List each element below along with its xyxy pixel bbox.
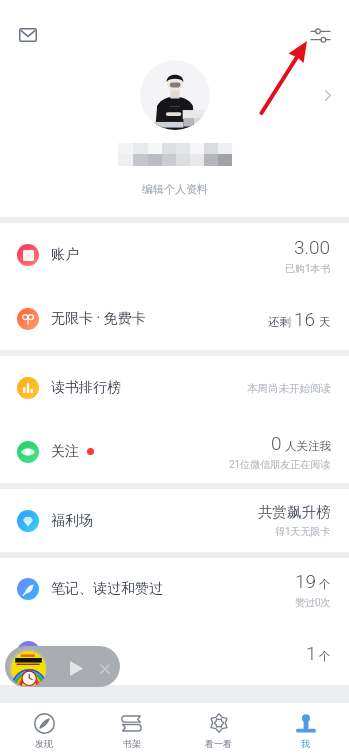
staticText: 看一看 [205,738,232,749]
button[interactable]: Profile details [315,82,341,108]
staticText: 天 [319,315,331,329]
button[interactable]: Settings [302,17,338,53]
staticText: 1 [306,642,317,664]
button[interactable]: Avatar [140,60,210,130]
staticText: 账户 [51,246,79,264]
button[interactable]: 笔记、读过和赞过 [0,558,349,620]
button[interactable]: Messages [10,17,46,53]
button[interactable]: 关注 [0,420,349,483]
button[interactable]: 我 [262,703,349,755]
button[interactable]: 看一看 [175,703,262,755]
button[interactable]: 读书排行榜 [0,356,349,420]
button[interactable]: 账户 [0,223,349,287]
staticText: 21位微信朋友正在阅读 [229,458,331,471]
staticText: 人关注我 [285,439,331,453]
staticText: 书架 [123,738,141,749]
button[interactable]: 编辑个人资料 [134,179,216,199]
staticText: 本周尚未开始阅读 [247,382,331,395]
staticText: 关注 [51,443,79,461]
staticText: 个 [319,649,331,663]
staticText: 16 [294,308,316,330]
staticText: 共赏飙升榜 [258,503,331,521]
button[interactable]: 发现 [0,703,88,755]
staticText: 编辑个人资料 [142,182,208,196]
button[interactable]: 书架 [88,703,175,755]
staticText: 得1天无限卡 [275,525,331,538]
staticText: 0 [271,432,282,454]
button[interactable]: 1 [0,620,349,685]
staticText: 已购1本书 [285,262,331,275]
button[interactable]: Mini player [5,646,120,687]
button[interactable]: 无限卡 · 免费卡 [0,287,349,350]
staticText: 发现 [35,738,53,749]
staticText: 19 [295,570,317,592]
staticText: 3.00 [294,236,331,258]
staticText: 我 [301,738,310,749]
staticText: 福利场 [51,512,93,530]
button[interactable]: 福利场 [0,489,349,552]
staticText: 赞过0次 [295,596,331,609]
staticText: 还剩 [268,315,291,329]
staticText: 个 [319,577,331,591]
staticText: 无限卡 · 免费卡 [51,310,146,328]
staticText: 读书排行榜 [51,379,121,397]
staticText: 笔记、读过和赞过 [51,580,163,598]
